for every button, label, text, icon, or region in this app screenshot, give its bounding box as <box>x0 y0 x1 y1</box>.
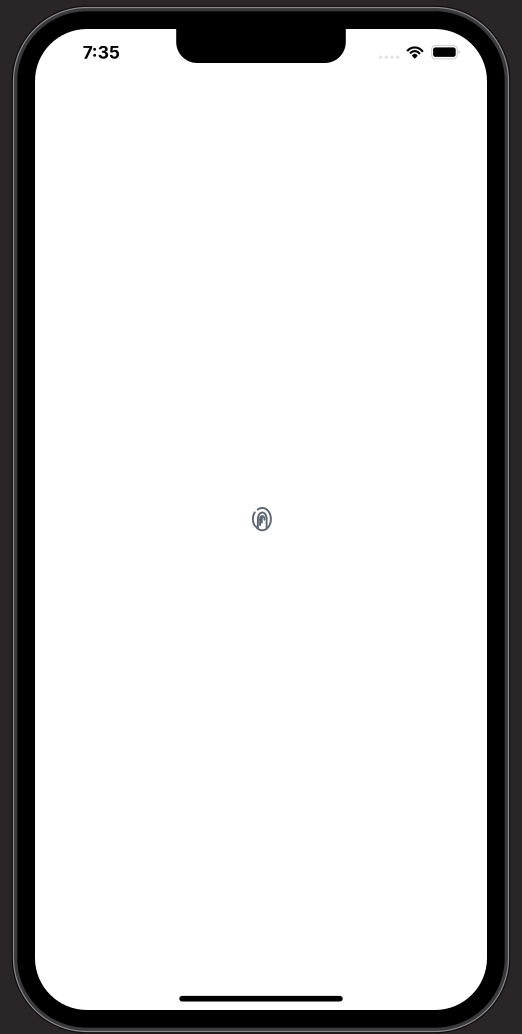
staticText: 7:35 <box>83 42 120 63</box>
button[interactable]: Touch ID <box>248 504 274 534</box>
